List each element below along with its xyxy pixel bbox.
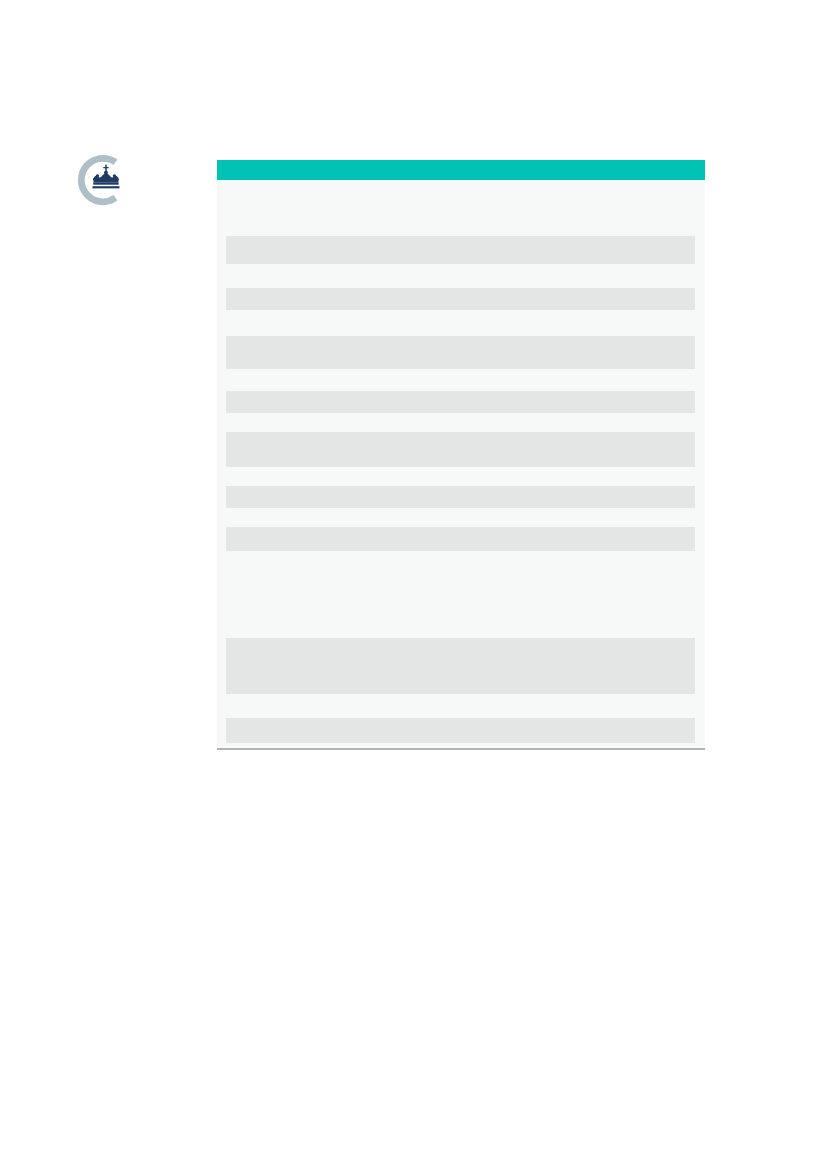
other: Danish royal crown logo [76, 153, 130, 207]
